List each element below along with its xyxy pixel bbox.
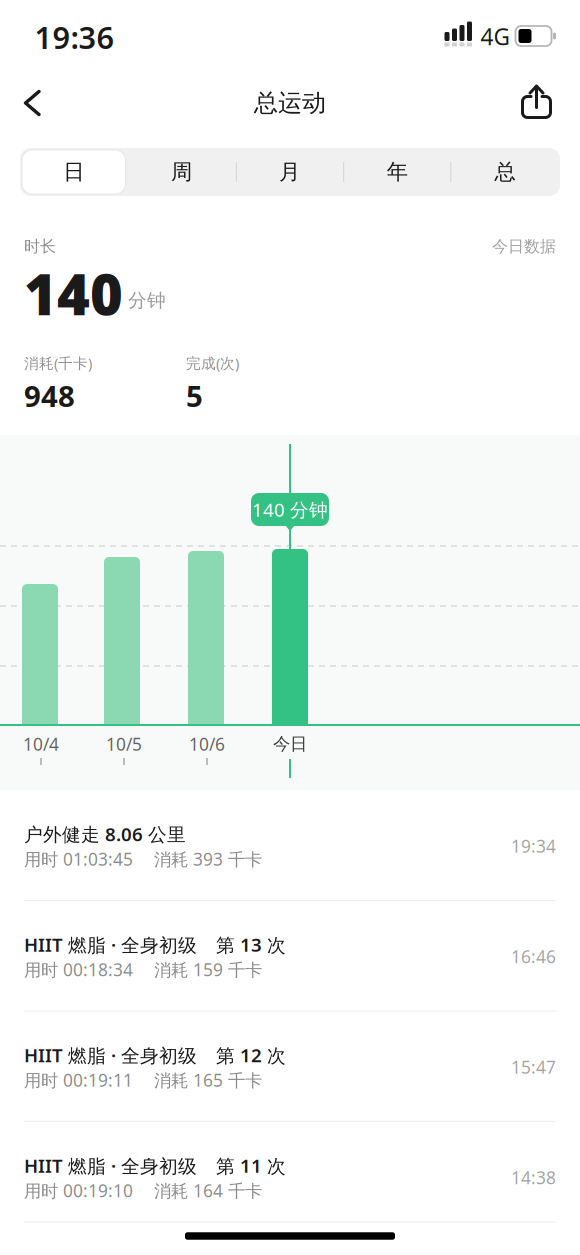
- staticText: 10/4: [23, 732, 59, 755]
- staticText: 19:36: [34, 17, 114, 57]
- staticText: 消耗 159 千卡: [154, 958, 262, 981]
- staticText: 4G: [480, 21, 510, 51]
- staticText: 140: [24, 256, 123, 331]
- button[interactable]: HIIT 燃脂 · 全身初级 第 13 次: [24, 900, 556, 1011]
- staticText: 分钟: [128, 289, 166, 312]
- button[interactable]: 日: [22, 150, 125, 194]
- button[interactable]: Share: [514, 77, 558, 125]
- button[interactable]: 年: [345, 150, 449, 194]
- staticText: 用时 00:19:10: [24, 1179, 133, 1202]
- button[interactable]: HIIT 燃脂 · 全身初级 第 12 次: [24, 1011, 556, 1121]
- staticText: HIIT 燃脂 · 全身初级 第 13 次: [24, 932, 286, 957]
- staticText: HIIT 燃脂 · 全身初级 第 12 次: [24, 1043, 286, 1067]
- staticText: 用时 01:03:45: [24, 847, 133, 870]
- staticText: 消耗 164 千卡: [154, 1179, 262, 1202]
- staticText: 今日数据: [492, 237, 556, 256]
- staticText: 15:47: [511, 1055, 556, 1078]
- staticText: 5: [186, 376, 203, 415]
- button[interactable]: 周: [130, 150, 233, 194]
- staticText: 今日: [273, 733, 307, 755]
- staticText: 10/5: [106, 732, 142, 755]
- staticText: HIIT 燃脂 · 全身初级 第 11 次: [24, 1153, 286, 1178]
- staticText: 14:38: [511, 1166, 556, 1189]
- staticText: 140 分钟: [252, 497, 328, 522]
- staticText: 户外健走 8.06 公里: [24, 822, 186, 846]
- staticText: 消耗(千卡): [24, 353, 92, 373]
- staticText: 年: [387, 159, 408, 185]
- button[interactable]: 户外健走 8.06 公里: [24, 790, 556, 900]
- staticText: 周: [171, 159, 192, 185]
- staticText: 时长: [24, 237, 56, 256]
- staticText: 19:34: [511, 834, 556, 857]
- staticText: 10/6: [189, 732, 225, 755]
- staticText: 16:46: [511, 945, 556, 968]
- staticText: 月: [279, 159, 300, 185]
- staticText: 日: [63, 159, 84, 185]
- staticText: 消耗 393 千卡: [154, 847, 262, 870]
- staticText: 消耗 165 千卡: [154, 1068, 262, 1091]
- button[interactable]: Back: [18, 81, 50, 125]
- button[interactable]: 月: [238, 150, 341, 194]
- button[interactable]: 总: [453, 150, 557, 194]
- staticText: 完成(次): [186, 353, 239, 373]
- staticText: 总: [494, 159, 515, 185]
- staticText: 948: [24, 376, 75, 415]
- staticText: 用时 00:19:11: [24, 1068, 133, 1091]
- button[interactable]: HIIT 燃脂 · 全身初级 第 11 次: [24, 1121, 556, 1232]
- staticText: 用时 00:18:34: [24, 958, 133, 981]
- staticText: 总运动: [254, 88, 326, 118]
